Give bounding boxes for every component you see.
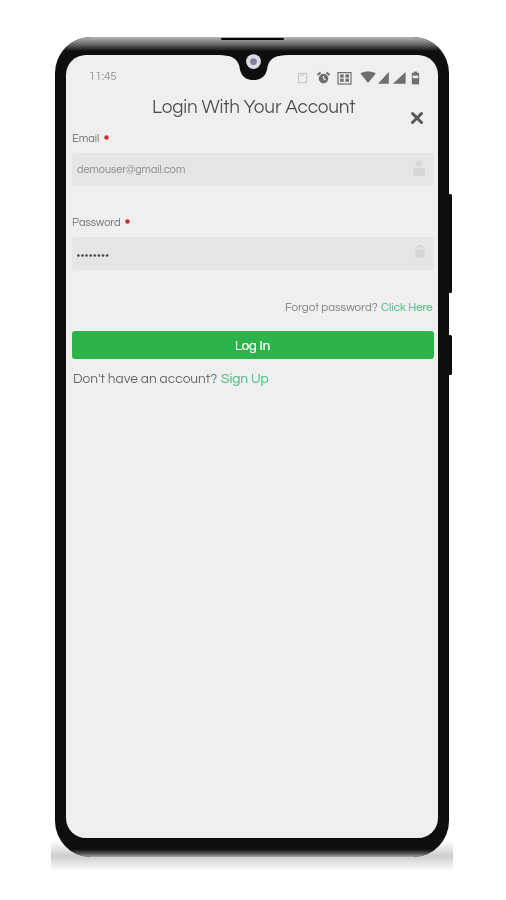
staticText: Don't have an account? (73, 372, 221, 386)
button[interactable]: Log In (72, 331, 434, 359)
staticText: demouser@gmail.com (77, 164, 186, 175)
button[interactable]: demouser@gmail.com (72, 153, 434, 186)
staticText: Login With Your Account (152, 97, 356, 117)
button[interactable]: Click Here (381, 302, 433, 314)
staticText: Log In (235, 339, 271, 352)
staticText: Click Here (381, 302, 433, 314)
button[interactable]: Close (404, 105, 430, 131)
staticText: Email (72, 133, 100, 144)
button[interactable]: Sign Up (221, 372, 269, 386)
staticText: 11:45 (89, 71, 117, 83)
staticText: Forgot password? (285, 302, 381, 314)
staticText: Password (72, 217, 121, 228)
button[interactable] (72, 237, 434, 270)
staticText: Sign Up (221, 372, 269, 386)
